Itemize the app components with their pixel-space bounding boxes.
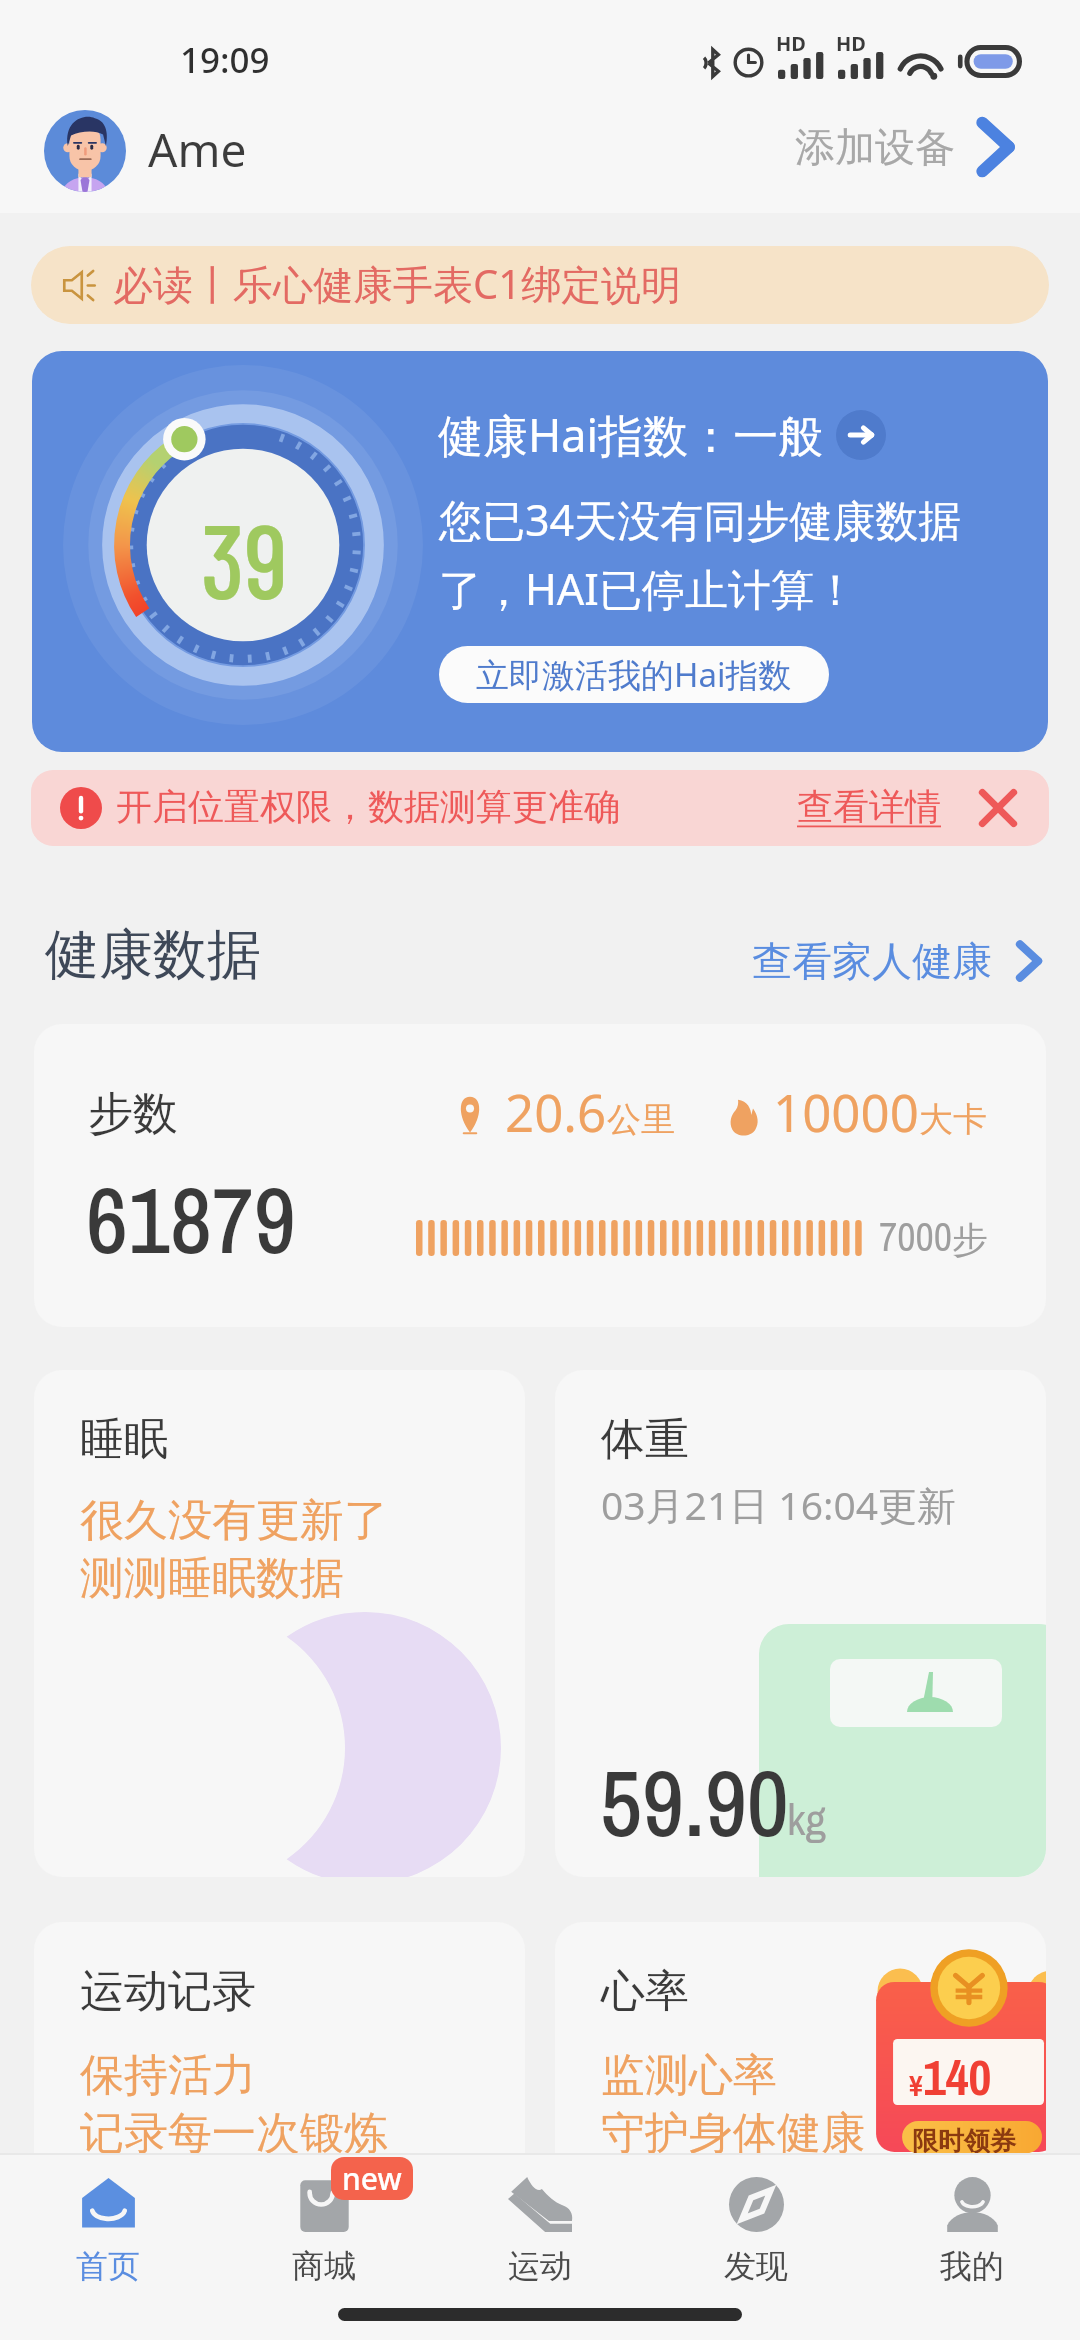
button[interactable]: 必读丨乐心健康手表C1绑定说明 — [31, 246, 1049, 324]
button[interactable]: Ame — [44, 110, 247, 192]
staticText: 03月21日 16:04更新 — [601, 1478, 957, 1531]
button[interactable]: 添加设备 — [795, 118, 1015, 176]
button[interactable]: 运动记录 — [34, 1922, 525, 2182]
staticText: 必读丨乐心健康手表C1绑定说明 — [113, 256, 682, 311]
staticText: 心率 — [601, 1964, 689, 2019]
button[interactable]: 立即激活我的Hai指数 — [439, 646, 829, 703]
button[interactable]: 查看家人健康 — [752, 936, 1042, 986]
staticText: 您已34天没有同步健康数据 了，HAI已停止计算！ — [439, 490, 962, 618]
staticText: 很久没有更新了 测测睡眠数据 — [80, 1493, 388, 1606]
button[interactable]: 体重 — [555, 1370, 1046, 1877]
staticText: new — [342, 2158, 402, 2199]
staticText: 7000 — [879, 1210, 952, 1264]
button[interactable]: new — [216, 2153, 432, 2293]
staticText: 59.90 — [600, 1741, 789, 1865]
staticText: 睡眠 — [80, 1412, 168, 1467]
button[interactable]: 我的 — [864, 2153, 1080, 2293]
staticText: 限时领券 — [912, 2125, 1016, 2158]
staticText: HD — [776, 30, 806, 57]
staticText: 体重 — [601, 1412, 689, 1467]
staticText: 19:09 — [180, 36, 270, 84]
staticText: 公里 — [607, 1098, 675, 1141]
button[interactable]: 运动 — [432, 2153, 648, 2293]
button[interactable]: 首页 — [0, 2153, 216, 2293]
staticText: 首页 — [76, 2246, 140, 2286]
staticText: 步数 — [88, 1086, 178, 1143]
staticText: kg — [787, 1788, 826, 1849]
staticText: 10000 — [773, 1077, 919, 1146]
staticText: 商城 — [292, 2246, 356, 2286]
button[interactable]: ¥ — [555, 1922, 1046, 2182]
button[interactable]: 步数 — [34, 1024, 1046, 1327]
staticText: 61879 — [86, 1158, 296, 1282]
button[interactable]: 发现 — [648, 2153, 864, 2293]
staticText: 运动记录 — [80, 1964, 256, 2019]
staticText: 开启位置权限，数据测算更准确 — [116, 784, 620, 829]
staticText: 我的 — [940, 2246, 1004, 2286]
staticText: 添加设备 — [795, 122, 955, 172]
staticText: HD — [836, 30, 866, 57]
staticText: 立即激活我的Hai指数 — [476, 652, 792, 697]
staticText: 步 — [952, 1217, 988, 1262]
staticText: 查看家人健康 — [752, 936, 992, 986]
staticText: Ame — [148, 118, 247, 181]
staticText: 大卡 — [919, 1098, 987, 1141]
staticText: 发现 — [724, 2246, 788, 2286]
staticText: 健康数据 — [45, 921, 261, 989]
staticText: 保持活力 记录每一次锻炼 — [80, 2048, 388, 2161]
staticText: 140 — [923, 2043, 992, 2110]
staticText: 监测心率 守护身体健康 — [601, 2048, 865, 2161]
staticText: 健康Hai指数：一般 — [438, 404, 824, 465]
button[interactable]: 睡眠 — [34, 1370, 525, 1877]
button[interactable]: 查看详情 — [797, 784, 941, 829]
staticText: 39 — [201, 495, 288, 620]
button[interactable]: 39 — [32, 351, 1048, 752]
staticText: ¥ — [909, 2065, 923, 2105]
staticText: 运动 — [508, 2246, 572, 2286]
button[interactable]: 查看健康Hai指数 — [836, 410, 886, 460]
staticText: 20.6 — [505, 1077, 607, 1146]
button[interactable]: 关闭 — [975, 785, 1021, 831]
